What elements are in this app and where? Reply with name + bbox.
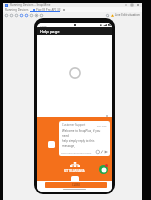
button[interactable]: Toolbar action (9, 12, 14, 18)
staticText: Live Edit situation (115, 13, 140, 17)
staticText: Running Devices (5, 8, 29, 12)
staticText: just now (97, 124, 107, 127)
button[interactable]: Live Edit situation (111, 12, 140, 18)
button[interactable]: Toolbar action (39, 12, 44, 18)
button[interactable]: Search (105, 13, 110, 18)
staticText: Running Devices – SnapMine (10, 3, 51, 7)
button[interactable]: Toolbar action (34, 12, 39, 18)
button[interactable]: Dismiss widget (105, 114, 108, 117)
button[interactable]: Type here and press enter (59, 148, 110, 156)
staticText: CLOSE (72, 183, 80, 187)
button[interactable]: CLOSE (45, 182, 107, 188)
button[interactable]: Toolbar action (29, 12, 34, 18)
staticText: Type here and press enter (61, 151, 92, 154)
button[interactable]: Close window (135, 3, 141, 7)
staticText: Customer Support (62, 123, 86, 127)
staticText: 10:09 (40, 24, 47, 27)
button[interactable]: Chat on WhatsApp (99, 165, 108, 174)
button[interactable]: Toolbar action (14, 12, 19, 18)
button[interactable]: Maximise (129, 3, 135, 7)
button[interactable]: Minimise (123, 3, 129, 7)
button[interactable]: Toolbar action (24, 12, 29, 18)
staticText: Welcome to SnapPlus, if you need help si… (62, 129, 107, 152)
staticText: Pixel 8 Pro API 33 (36, 8, 61, 12)
button[interactable]: Pixel 8 Pro API 33 (33, 7, 65, 12)
staticText: SIT TELANGANA (64, 169, 85, 173)
button[interactable]: Toolbar action (19, 12, 24, 18)
button[interactable]: Toolbar action (4, 12, 9, 18)
staticText: Help page (40, 29, 60, 34)
